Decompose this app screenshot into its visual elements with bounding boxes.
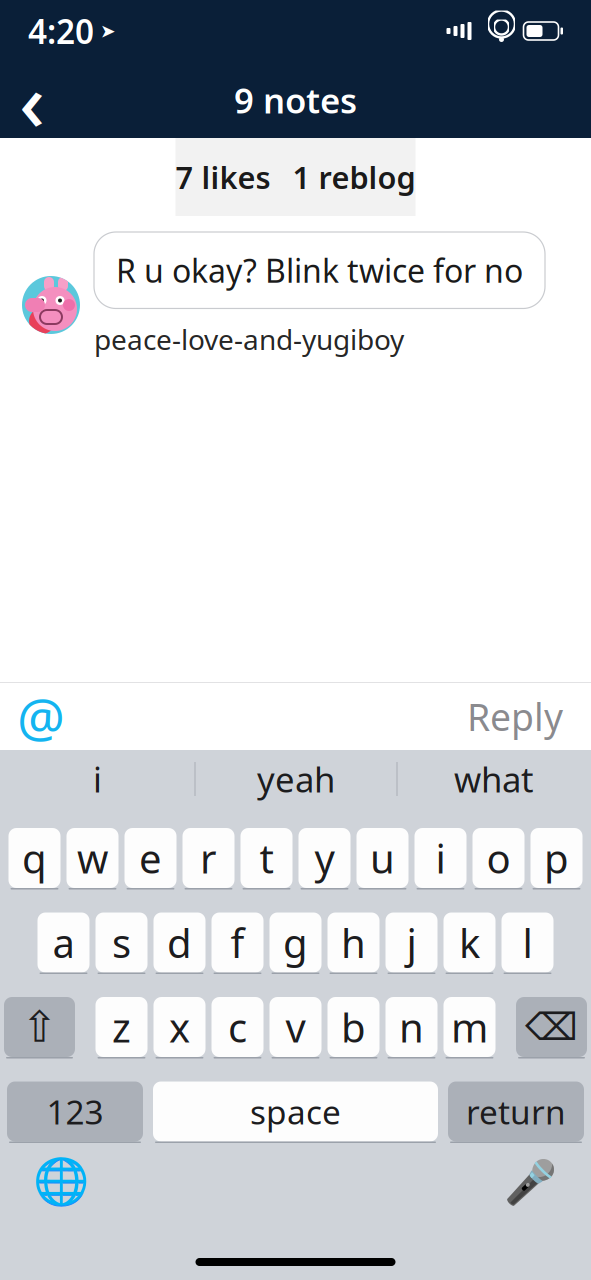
staticText: u [370, 831, 395, 884]
staticText: h [341, 916, 366, 969]
button[interactable]: i [414, 828, 466, 889]
button[interactable]: Reply [459, 684, 571, 749]
staticText: i [435, 831, 445, 884]
button[interactable]: h [327, 912, 379, 974]
staticText: y [314, 831, 334, 884]
staticText: 123 [46, 1089, 103, 1134]
staticText: k [459, 916, 480, 969]
staticText: Reply [467, 692, 563, 741]
staticText: d [167, 916, 192, 969]
staticText: c [228, 1000, 247, 1053]
staticText: r [200, 831, 217, 884]
staticText: return [466, 1089, 566, 1134]
button[interactable]: n [385, 997, 437, 1058]
button[interactable]: u [356, 828, 408, 889]
staticText: ⌫ [525, 1006, 578, 1048]
staticText: b [341, 1000, 366, 1053]
staticText: ⇧ [21, 1003, 57, 1051]
staticText: l [522, 916, 532, 969]
button[interactable]: Shift [4, 997, 75, 1058]
staticText: s [112, 916, 131, 969]
button[interactable]: z [95, 997, 147, 1058]
staticText: q [22, 831, 47, 884]
staticText: 🌐 [33, 1156, 89, 1208]
staticText: v [285, 1000, 305, 1053]
staticText: 4:20 [28, 9, 94, 53]
button[interactable]: y [298, 828, 350, 889]
button[interactable]: v [269, 997, 321, 1058]
button[interactable]: q [8, 828, 60, 889]
button[interactable]: Mention a blog [14, 686, 68, 746]
staticText: ‹ [19, 47, 45, 153]
button[interactable]: w [66, 828, 118, 889]
button[interactable]: p [530, 828, 582, 889]
button[interactable]: Delete [516, 997, 587, 1058]
button[interactable]: d [153, 912, 205, 974]
staticText: a [52, 916, 74, 969]
button[interactable]: f [211, 912, 263, 974]
button[interactable]: return [448, 1081, 584, 1143]
staticText: @ [17, 681, 65, 752]
button[interactable]: k [443, 912, 495, 974]
button[interactable]: m [443, 997, 495, 1058]
staticText: w [77, 831, 108, 884]
button[interactable]: space [153, 1081, 438, 1143]
button[interactable]: b [327, 997, 379, 1058]
button[interactable]: j [385, 912, 437, 974]
staticText: j [406, 916, 416, 969]
button[interactable]: t [240, 828, 292, 889]
staticText: x [169, 1000, 190, 1053]
staticText: what [454, 756, 534, 802]
staticText: 1 reblog [292, 157, 415, 197]
button[interactable]: e [124, 828, 176, 889]
button[interactable]: what [397, 750, 590, 808]
staticText: z [112, 1000, 131, 1053]
staticText: yeah [257, 756, 335, 802]
staticText: ➤ [100, 20, 116, 42]
staticText: m [451, 1000, 488, 1053]
staticText: g [283, 916, 308, 969]
staticText: o [486, 831, 510, 884]
button[interactable]: a [37, 912, 89, 974]
button[interactable]: 123 [7, 1081, 143, 1143]
staticText: 7 likes [175, 157, 270, 197]
staticText: f [230, 916, 244, 969]
button[interactable]: l [501, 912, 553, 974]
button[interactable]: g [269, 912, 321, 974]
staticText: t [259, 831, 273, 884]
button[interactable]: o [472, 828, 524, 889]
staticText: n [399, 1000, 424, 1053]
button[interactable]: s [95, 912, 147, 974]
staticText: 🎤 [503, 1158, 556, 1206]
button[interactable]: peace-love-and-yugiboy [94, 308, 404, 364]
button[interactable]: Back [6, 70, 58, 130]
staticText: i [93, 756, 102, 802]
staticText: space [250, 1089, 341, 1134]
button[interactable]: i [0, 750, 194, 808]
staticText: peace-love-and-yugiboy [94, 320, 404, 358]
button[interactable]: c [211, 997, 263, 1058]
button[interactable]: Dictation [499, 1153, 561, 1211]
button[interactable]: Next keyboard [30, 1153, 92, 1211]
staticText: e [139, 831, 162, 884]
button[interactable]: yeah [195, 750, 396, 808]
staticText: R u okay? Blink twice for no [116, 249, 523, 291]
button[interactable]: r [182, 828, 234, 889]
button[interactable]: x [153, 997, 205, 1058]
staticText: 9 notes [234, 77, 357, 123]
staticText: p [544, 831, 569, 884]
